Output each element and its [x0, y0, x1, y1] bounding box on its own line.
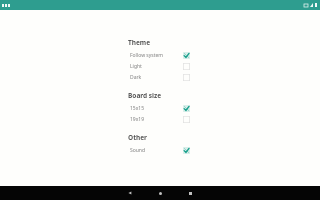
staticText: Other	[128, 133, 147, 142]
staticText: 19x19	[130, 116, 181, 123]
button[interactable]: Follow system	[128, 50, 192, 61]
staticText: Dark	[130, 74, 181, 81]
button[interactable]: Dark	[128, 72, 192, 83]
staticText: Sound	[130, 147, 181, 154]
button[interactable]: Home	[145, 186, 175, 200]
button[interactable]: 15x15	[128, 103, 192, 114]
staticText: 15x15	[130, 105, 181, 112]
staticText: Light	[130, 63, 181, 70]
staticText: Theme	[128, 38, 151, 47]
button[interactable]: Sound	[128, 145, 192, 156]
button[interactable]: Light	[128, 61, 192, 72]
staticText: Board size	[128, 91, 162, 100]
button[interactable]: 19x19	[128, 114, 192, 125]
button[interactable]: Back	[115, 186, 145, 200]
staticText: Follow system	[130, 52, 181, 59]
button[interactable]: Recent apps	[175, 186, 205, 200]
